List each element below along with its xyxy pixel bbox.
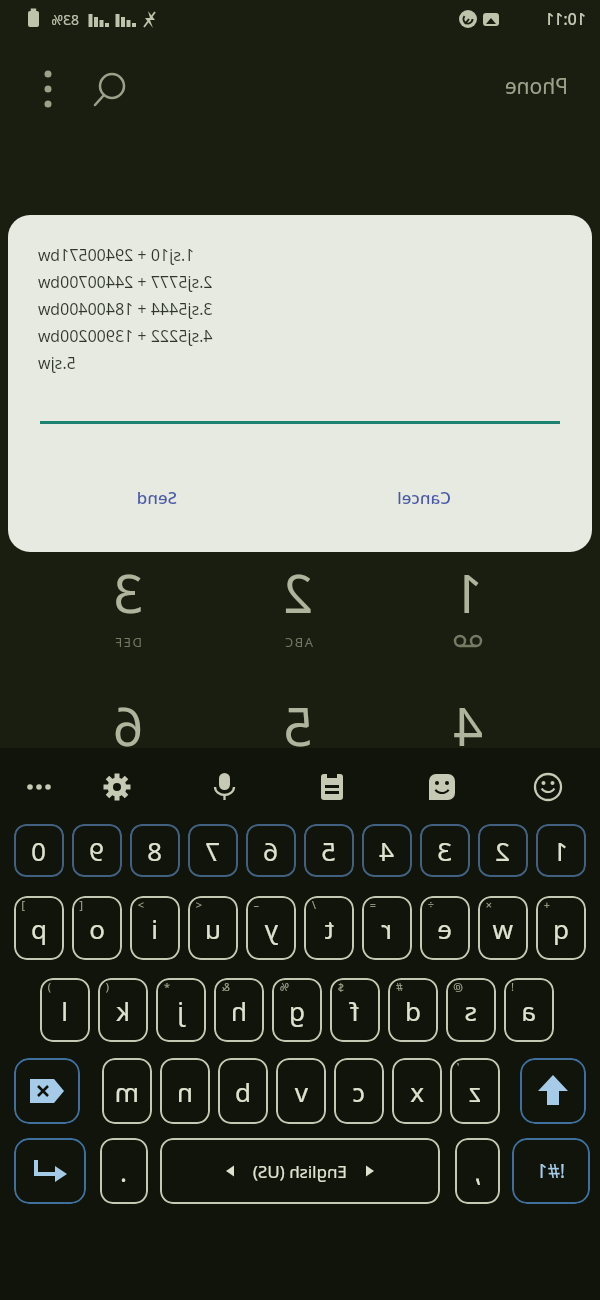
button[interactable]: c (334, 1058, 384, 1124)
button[interactable]: o (72, 896, 122, 960)
button[interactable]: p (14, 896, 64, 960)
staticText: i (151, 911, 158, 946)
button[interactable]: , (455, 1138, 500, 1204)
staticText: h (230, 993, 247, 1028)
staticText: a (521, 993, 536, 1028)
staticText: q (553, 911, 569, 946)
staticText: f (350, 993, 359, 1028)
button[interactable]: 5 (304, 824, 354, 877)
staticText: 3.sj5444 + 18400400bw (38, 298, 562, 320)
staticText: ( (105, 979, 109, 994)
staticText: ’ (457, 1059, 459, 1074)
button[interactable]: l (40, 978, 90, 1042)
staticText: @ (453, 979, 463, 994)
button[interactable]: q (536, 896, 586, 960)
staticText: 2 (283, 557, 313, 628)
staticText: ] (21, 897, 25, 912)
staticText: w (492, 911, 513, 946)
staticText: o (89, 911, 105, 946)
staticText: y (264, 911, 278, 946)
staticText: s (464, 993, 477, 1028)
button[interactable]: n (160, 1058, 210, 1124)
staticText: e (437, 911, 452, 946)
button[interactable]: i (130, 896, 180, 960)
staticText: t (324, 911, 334, 946)
button[interactable]: k (98, 978, 148, 1042)
staticText: 4 (379, 833, 394, 868)
button[interactable]: Cancel (354, 472, 494, 522)
staticText: k (116, 993, 130, 1028)
button[interactable]: z (450, 1058, 500, 1124)
staticText: p (31, 911, 47, 946)
button[interactable]: 2 (478, 824, 528, 877)
staticText: % (279, 979, 289, 994)
button[interactable]: w (478, 896, 528, 960)
staticText: 3 (437, 833, 452, 868)
staticText: c (352, 1074, 365, 1109)
staticText: English (US) (252, 1160, 347, 1183)
button[interactable]: y (246, 896, 296, 960)
button[interactable]: s (446, 978, 496, 1042)
staticText: – (253, 897, 259, 912)
button[interactable]: . (100, 1138, 148, 1204)
button[interactable]: 4 (362, 824, 412, 877)
staticText: r (381, 911, 392, 946)
staticText: ) (47, 979, 51, 994)
staticText: 2.sj5777 + 24400700bw (38, 271, 562, 293)
button[interactable]: d (388, 978, 438, 1042)
button[interactable]: a (504, 978, 554, 1042)
staticText: 5 (283, 690, 313, 761)
staticText: 1 (453, 557, 483, 628)
button[interactable]: !#1 (512, 1138, 590, 1204)
button[interactable] (520, 1058, 586, 1124)
staticText: u (204, 911, 221, 946)
button[interactable]: 3 (420, 824, 470, 877)
button[interactable]: English (US) (160, 1138, 440, 1204)
staticText: 5.sjw (38, 352, 562, 374)
button[interactable]: g (272, 978, 322, 1042)
staticText: !#1 (536, 1158, 565, 1184)
button[interactable]: 0 (14, 824, 64, 877)
button[interactable]: Send (87, 472, 227, 522)
button[interactable]: h (214, 978, 264, 1042)
button[interactable]: r (362, 896, 412, 960)
staticText: Phone (504, 72, 568, 101)
button[interactable] (82, 60, 138, 116)
staticText: 1 (553, 833, 568, 868)
button[interactable] (14, 1058, 80, 1124)
staticText: b (235, 1074, 251, 1109)
button[interactable]: x (392, 1058, 442, 1124)
button[interactable]: t (304, 896, 354, 960)
button[interactable]: b (218, 1058, 268, 1124)
button[interactable] (20, 60, 76, 116)
staticText: ÷ (427, 897, 434, 912)
staticText: [ (79, 897, 83, 912)
button[interactable]: 6 (246, 824, 296, 877)
button[interactable]: j (156, 978, 206, 1042)
staticText: . (120, 1154, 127, 1189)
staticText: = (369, 897, 376, 912)
button[interactable]: 7 (188, 824, 238, 877)
staticText: < (195, 897, 202, 912)
button[interactable]: f (330, 978, 380, 1042)
staticText: v (294, 1074, 308, 1109)
staticText: x (410, 1074, 424, 1109)
button[interactable]: e (420, 896, 470, 960)
button[interactable]: 9 (72, 824, 122, 877)
button[interactable] (14, 1138, 86, 1204)
staticText: m (114, 1074, 139, 1109)
staticText: ABC (283, 633, 313, 651)
button[interactable]: u (188, 896, 238, 960)
staticText: 10:11 (545, 8, 586, 30)
staticText: $ (337, 979, 344, 994)
staticText: 4 (453, 690, 483, 761)
staticText: 1.sj10 + 29400571bw (38, 244, 562, 266)
staticText: 4.sj5222 + 13900200bw (38, 325, 562, 347)
staticText: 7 (205, 833, 220, 868)
staticText: × (485, 897, 492, 912)
button[interactable]: 1 (536, 824, 586, 877)
button[interactable]: m (102, 1058, 152, 1124)
button[interactable]: 8 (130, 824, 180, 877)
staticText: > (137, 897, 144, 912)
button[interactable]: v (276, 1058, 326, 1124)
